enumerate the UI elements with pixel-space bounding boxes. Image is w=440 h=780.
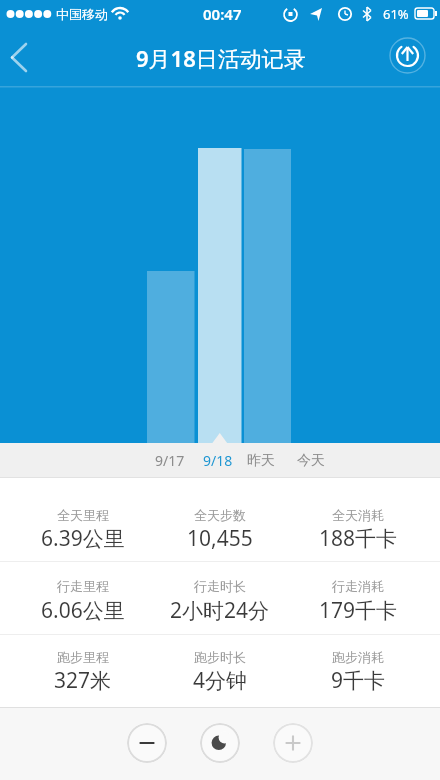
staticText: 行走消耗 <box>332 578 384 594</box>
button[interactable] <box>200 723 240 763</box>
staticText: 9/18 <box>203 451 233 470</box>
staticText: 9月18日活动记录 <box>136 43 306 73</box>
staticText: 61% <box>383 5 409 23</box>
staticText: 6.39公里 <box>41 524 125 553</box>
staticText: 行走里程 <box>57 578 109 594</box>
staticText: 179千卡 <box>319 596 398 625</box>
staticText: 9千卡 <box>331 666 386 695</box>
button[interactable] <box>273 723 313 763</box>
staticText: 全天步数 <box>194 507 246 523</box>
staticText: 2小时24分 <box>170 596 270 625</box>
staticText: 今天 <box>297 452 325 470</box>
button[interactable] <box>127 723 167 763</box>
staticText: 00:47 <box>203 4 242 24</box>
staticText: 9/17 <box>155 451 185 470</box>
staticText: 跑步消耗 <box>332 649 384 665</box>
staticText: 行走时长 <box>194 578 246 594</box>
button[interactable]: 9/17 <box>147 443 193 478</box>
button[interactable]: 昨天 <box>238 443 284 478</box>
staticText: 10,455 <box>187 524 253 553</box>
staticText: 4分钟 <box>193 666 248 695</box>
staticText: 中国移动 <box>56 6 108 22</box>
staticText: 跑步里程 <box>57 649 109 665</box>
staticText: 昨天 <box>247 452 275 470</box>
button[interactable] <box>0 34 48 82</box>
staticText: 全天里程 <box>57 507 109 523</box>
staticText: 全天消耗 <box>332 507 384 523</box>
staticText: 6.06公里 <box>41 596 125 625</box>
button[interactable]: 今天 <box>288 443 334 478</box>
button[interactable]: 9/18 <box>195 443 241 478</box>
staticText: 327米 <box>54 666 112 695</box>
button[interactable] <box>384 34 432 82</box>
staticText: 188千卡 <box>319 524 398 553</box>
staticText: 跑步时长 <box>194 649 246 665</box>
